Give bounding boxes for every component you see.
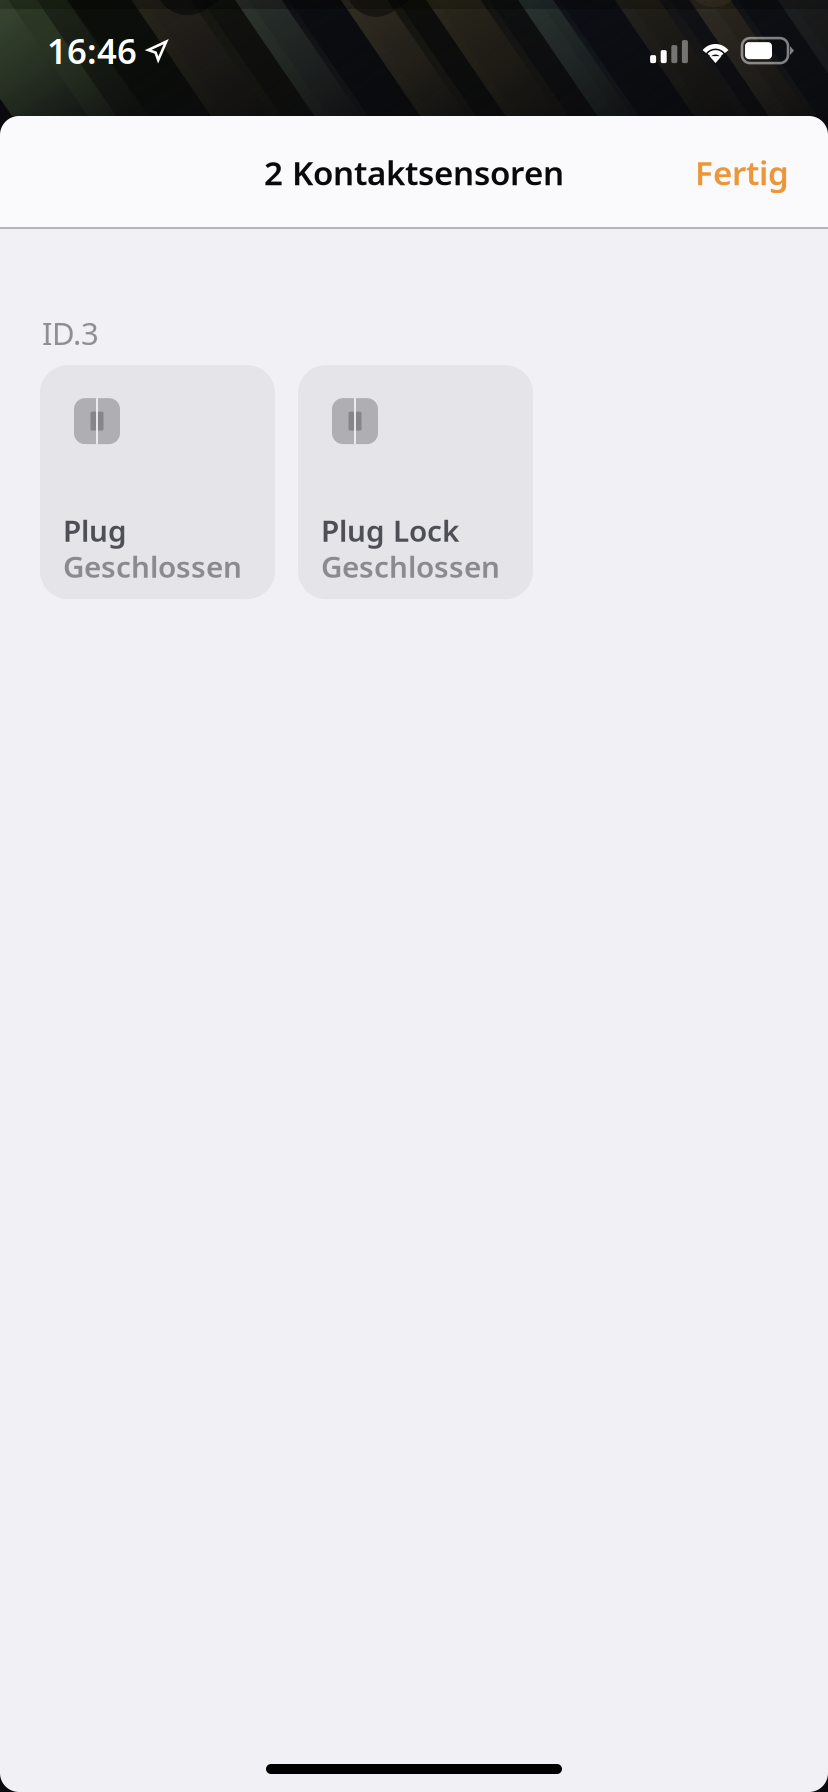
button[interactable]: Fertig	[681, 134, 803, 211]
staticText: ID.3	[42, 312, 99, 354]
staticText: 2 Kontaktsensoren	[264, 150, 564, 195]
staticText: Geschlossen	[63, 546, 242, 586]
button[interactable]: Plug Lock	[298, 365, 533, 599]
staticText: Plug	[63, 510, 127, 550]
button[interactable]: Plug	[40, 365, 275, 599]
staticText: Fertig	[695, 150, 789, 195]
staticText: 16:46	[47, 27, 137, 74]
staticText: Geschlossen	[321, 546, 500, 586]
staticText: Plug Lock	[321, 510, 459, 550]
